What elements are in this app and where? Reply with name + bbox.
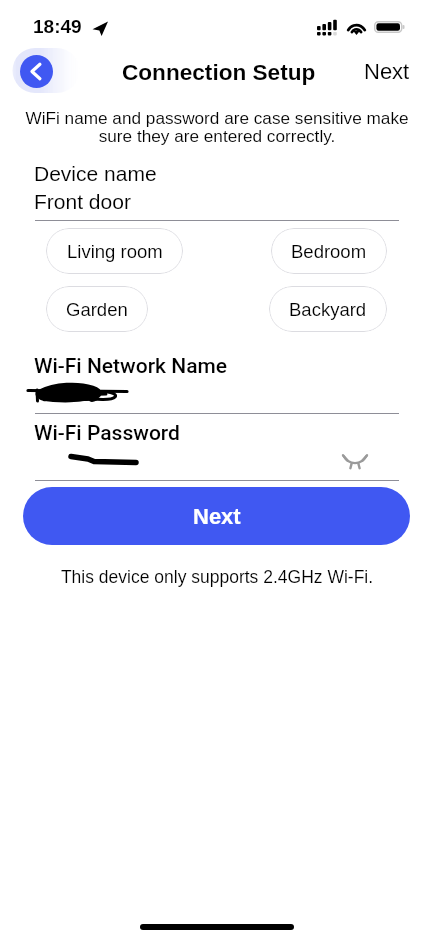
staticText: Garden (66, 299, 128, 320)
staticText: Next (364, 59, 410, 84)
staticText: Device name (34, 162, 157, 185)
button[interactable]: Bedroom (271, 228, 387, 274)
staticText: This device only supports 2.4GHz Wi-Fi. (0, 567, 434, 587)
button[interactable]: Back (11, 46, 81, 95)
staticText: Front door (34, 190, 131, 213)
button[interactable]: Living room (46, 228, 183, 274)
staticText: WiFi name and password are case sensitiv… (24, 108, 410, 146)
staticText: Backyard (289, 299, 367, 320)
button[interactable]: Backyard (269, 286, 387, 332)
staticText: Living room (67, 241, 163, 262)
button[interactable]: Garden (46, 286, 148, 332)
staticText: Wi-Fi Password (34, 421, 180, 446)
staticText: 18:49 (33, 16, 82, 37)
staticText: Wi-Fi Network Name (34, 354, 228, 379)
staticText: Bedroom (291, 241, 367, 262)
button[interactable]: Next (23, 487, 410, 545)
staticText: Next (193, 504, 241, 529)
button[interactable]: Next (351, 51, 423, 92)
staticText: Connection Setup (122, 60, 316, 85)
